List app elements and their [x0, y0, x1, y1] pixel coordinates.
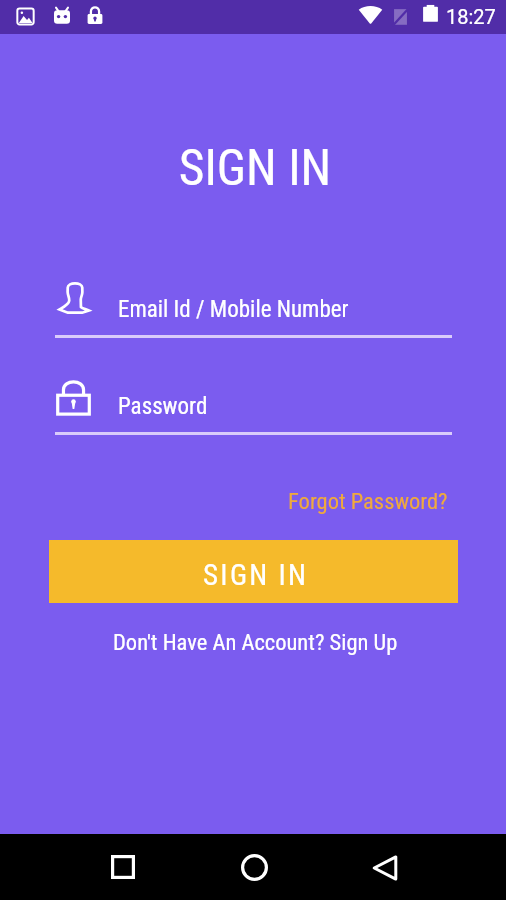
- button[interactable]: Password: [55, 372, 452, 435]
- staticText: Email Id / Mobile Number: [118, 296, 349, 323]
- button[interactable]: Home: [238, 851, 270, 883]
- button[interactable]: Don't Have An Account? Sign Up: [113, 629, 398, 655]
- button[interactable]: Recent apps: [107, 851, 139, 883]
- staticText: Don't Have An Account? Sign Up: [113, 629, 398, 655]
- button[interactable]: Forgot Password?: [288, 488, 448, 514]
- staticText: SIGN IN: [203, 558, 309, 592]
- staticText: Password: [118, 393, 208, 420]
- staticText: 18:27: [446, 5, 496, 28]
- button[interactable]: Email Id / Mobile Number: [55, 275, 452, 338]
- staticText: Forgot Password?: [288, 488, 448, 514]
- staticText: SIGN IN: [2, 139, 506, 197]
- button[interactable]: SIGN IN: [49, 540, 458, 603]
- button[interactable]: Back: [369, 852, 401, 884]
